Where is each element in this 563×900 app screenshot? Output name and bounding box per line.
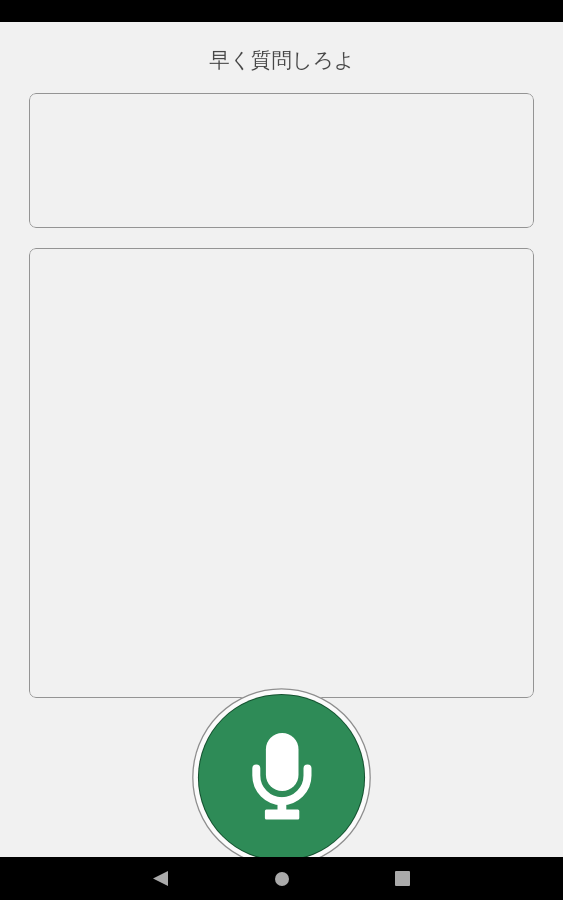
button[interactable]: Back	[100, 857, 221, 900]
button[interactable]: Home	[221, 857, 342, 900]
staticText: 早く質問しろよ	[209, 47, 355, 73]
button[interactable]: Question input	[29, 93, 534, 228]
button[interactable]: Answer area	[29, 248, 534, 698]
button[interactable]: Start voice input	[192, 688, 371, 867]
button[interactable]: Recent apps	[342, 857, 463, 900]
